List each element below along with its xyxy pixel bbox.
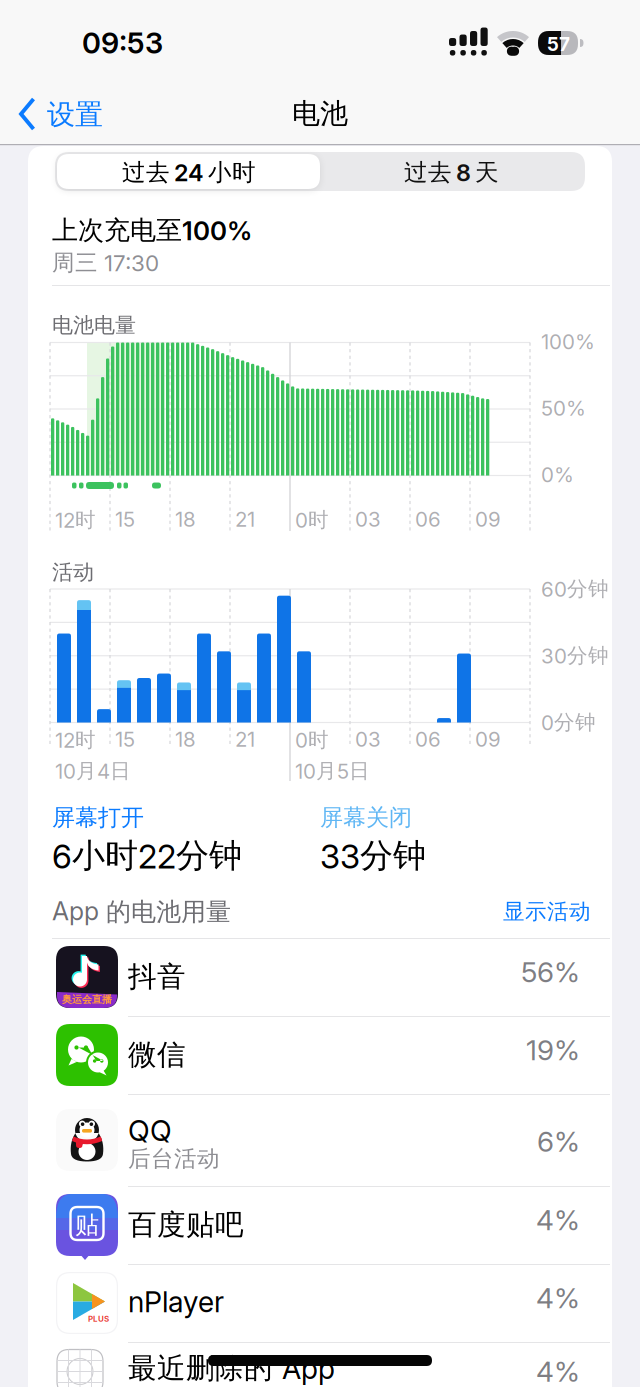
staticText: 4%	[536, 1203, 580, 1237]
staticText: 百度贴吧	[128, 1207, 244, 1243]
staticText: 4%	[536, 1281, 580, 1315]
staticText: 奥运会直播	[62, 993, 112, 1006]
button[interactable]: PLUS	[28, 1264, 612, 1342]
staticText: 6小时22分钟	[52, 835, 242, 877]
button[interactable]: 过去 24 小时	[57, 154, 320, 189]
staticText: 设置	[47, 97, 103, 132]
button[interactable]: 过去 8 天	[320, 154, 583, 189]
staticText: 屏幕打开	[52, 803, 144, 832]
staticText: 0时	[295, 507, 329, 533]
staticText: 电池	[292, 96, 348, 131]
staticText: 最近删除的 App	[128, 1350, 335, 1386]
button[interactable]: 最近删除的 App	[28, 1342, 612, 1387]
staticText: 18	[175, 507, 196, 532]
staticText: 显示活动	[503, 898, 591, 925]
staticText: 06	[415, 507, 441, 532]
staticText: 过去 24 小时	[122, 157, 256, 187]
button[interactable]: 奥运会直播	[28, 938, 612, 1016]
staticText: 21	[235, 727, 255, 752]
staticText: App 的电池用量	[52, 896, 231, 928]
staticText: 12时	[55, 727, 96, 753]
staticText: 电池电量	[52, 312, 136, 338]
staticText: 21	[235, 507, 255, 532]
staticText: 上次充电至100%	[52, 214, 252, 247]
staticText: 56%	[521, 955, 580, 989]
staticText: 屏幕关闭	[320, 803, 412, 832]
staticText: 03	[355, 727, 381, 752]
staticText: 10月4日	[55, 758, 131, 784]
staticText: 活动	[52, 559, 94, 585]
staticText: 18	[175, 727, 196, 752]
staticText: 50%	[541, 396, 586, 421]
button[interactable]: QQ	[28, 1094, 612, 1186]
staticText: 12时	[55, 507, 96, 533]
staticText: QQ	[128, 1113, 172, 1148]
staticText: 贴	[75, 1210, 99, 1240]
staticText: PLUS	[88, 1314, 109, 1324]
staticText: 6%	[537, 1124, 580, 1158]
staticText: 09	[475, 727, 501, 752]
staticText: 15	[115, 507, 135, 532]
staticText: 09:53	[82, 25, 163, 61]
button[interactable]: 微信	[28, 1016, 612, 1094]
staticText: 09	[475, 507, 501, 532]
staticText: 过去 8 天	[404, 157, 499, 187]
staticText: 周三 17:30	[52, 248, 159, 277]
staticText: 抖音	[128, 959, 186, 995]
staticText: 0时	[295, 727, 329, 753]
staticText: 后台活动	[128, 1145, 220, 1173]
staticText: 19%	[526, 1033, 580, 1067]
button[interactable]: 显示活动	[451, 898, 591, 925]
button[interactable]: 返回设置	[10, 88, 130, 140]
staticText: 10月5日	[295, 758, 370, 784]
staticText: 0分钟	[541, 709, 596, 735]
staticText: 33分钟	[320, 835, 426, 877]
staticText: 03	[355, 507, 381, 532]
staticText: 60分钟	[541, 576, 609, 602]
staticText: 06	[415, 727, 441, 752]
staticText: 30分钟	[541, 643, 609, 669]
staticText: 0%	[541, 462, 574, 487]
staticText: 57	[547, 32, 570, 55]
button[interactable]: 贴	[28, 1186, 612, 1264]
staticText: 微信	[128, 1037, 186, 1073]
staticText: 100%	[541, 329, 595, 354]
staticText: 4%	[536, 1354, 580, 1387]
staticText: 15	[115, 727, 135, 752]
staticText: nPlayer	[128, 1285, 224, 1319]
